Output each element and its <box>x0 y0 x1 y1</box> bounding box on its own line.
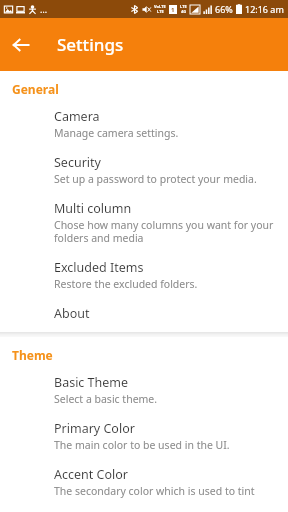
staticText: Manage camera settings. <box>54 126 179 140</box>
staticText: The main color to be used in the UI. <box>54 438 230 452</box>
staticText: Select a basic theme. <box>54 392 158 406</box>
staticText: 12:16 am <box>245 3 284 15</box>
staticText: Excluded Items <box>54 259 144 276</box>
button[interactable]: Excluded Items <box>0 252 288 298</box>
button[interactable]: Security <box>0 147 288 193</box>
button[interactable]: Basic Theme <box>0 367 288 413</box>
staticText: Theme <box>12 347 53 363</box>
staticText: Chose how many columns you want for your… <box>54 218 276 245</box>
staticText: The secondary color which is used to tin… <box>54 484 255 498</box>
staticText: 1 <box>171 6 175 14</box>
staticText: General <box>12 81 59 97</box>
staticText: Primary Color <box>54 420 135 437</box>
staticText: … <box>40 3 48 15</box>
staticText: Accent Color <box>54 466 128 483</box>
staticText: Security <box>54 154 101 171</box>
staticText: 66% <box>215 3 233 15</box>
staticText: Multi column <box>54 200 132 217</box>
staticText: Set up a password to protect your media. <box>54 172 257 186</box>
staticText: Basic Theme <box>54 374 129 391</box>
staticText: Camera <box>54 108 100 125</box>
button[interactable]: Back <box>7 31 35 59</box>
staticText: About <box>54 305 90 322</box>
staticText: Settings <box>57 33 124 56</box>
button[interactable]: Primary Color <box>0 413 288 459</box>
staticText: 4G <box>181 9 187 14</box>
staticText: Restore the excluded folders. <box>54 277 198 291</box>
staticText: LTE <box>157 9 164 14</box>
staticText: LTE <box>180 4 187 9</box>
button[interactable]: About <box>0 298 288 329</box>
button[interactable]: Accent Color <box>0 459 288 505</box>
button[interactable]: Camera <box>0 101 288 147</box>
staticText: VoLTE <box>154 4 166 9</box>
button[interactable]: Multi column <box>0 193 288 252</box>
